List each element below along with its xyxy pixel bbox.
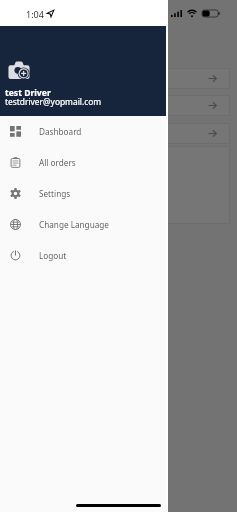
staticText: Settings: [39, 188, 71, 199]
staticText: Dashboard: [39, 126, 82, 137]
staticText: All orders: [39, 157, 76, 168]
staticText: 1:04: [26, 8, 44, 20]
staticText: Logout: [39, 250, 67, 261]
staticText: testdriver@yopmail.com: [5, 96, 102, 107]
button[interactable]: Dashboard: [0, 116, 168, 147]
staticText: Change Language: [39, 219, 109, 230]
button[interactable]: All orders: [0, 147, 168, 178]
button[interactable]: Logout: [0, 240, 168, 271]
button[interactable]: Change Language: [0, 209, 168, 240]
button[interactable]: Settings: [0, 178, 168, 209]
staticText: test Driver: [5, 87, 51, 99]
